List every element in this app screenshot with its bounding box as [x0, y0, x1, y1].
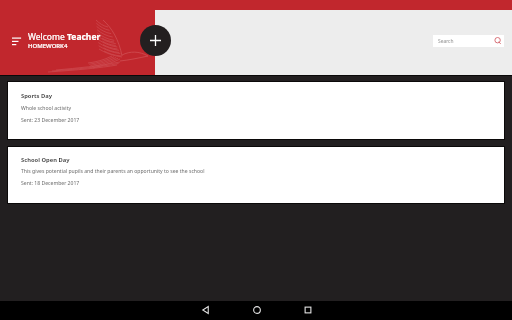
- button[interactable]: Add homework: [140, 25, 171, 56]
- staticText: Teacher: [67, 31, 101, 43]
- button[interactable]: Back: [191, 296, 219, 320]
- staticText: Sent: 18 December 2017: [21, 180, 80, 187]
- button[interactable]: Search: [433, 35, 504, 47]
- button[interactable]: Recent apps: [293, 296, 321, 320]
- button[interactable]: Sports Day: [8, 82, 504, 139]
- staticText: This gives potential pupils and their pa…: [21, 168, 205, 175]
- staticText: Whole school activity: [21, 105, 72, 112]
- button[interactable]: Home: [242, 296, 270, 320]
- staticText: HOMEWORK4: [28, 42, 68, 50]
- staticText: School Open Day: [21, 156, 70, 164]
- staticText: Welcome: [28, 31, 67, 43]
- staticText: Sports Day: [21, 92, 53, 100]
- staticText: Sent: 23 December 2017: [21, 117, 80, 124]
- button[interactable]: School Open Day: [8, 147, 504, 203]
- staticText: Search: [438, 38, 454, 45]
- button[interactable]: Open navigation menu: [6, 30, 26, 50]
